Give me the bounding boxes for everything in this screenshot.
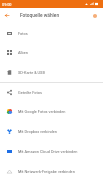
staticText: Mit Google Fotos verbinden bbox=[18, 109, 66, 114]
staticText: Mit Amazon Cloud Drive verbinden bbox=[18, 149, 78, 154]
staticText: Mit Netzwerk-Freigabe verbinden bbox=[18, 169, 75, 174]
staticText: Alben bbox=[18, 50, 28, 55]
staticText: Geteilte Fotos bbox=[18, 90, 43, 95]
button[interactable]: Settings bbox=[87, 8, 102, 23]
staticText: Fotoquelle wählen bbox=[20, 13, 60, 19]
button[interactable]: SD-Karte & USB bbox=[0, 62, 103, 82]
button[interactable]: Fotos bbox=[0, 23, 103, 43]
staticText: Mit Dropbox verbinden bbox=[18, 129, 58, 134]
button[interactable]: Geteilte Fotos bbox=[0, 82, 103, 102]
staticText: SD-Karte & USB bbox=[18, 70, 45, 75]
button[interactable]: Mit Netzwerk-Freigabe verbinden bbox=[0, 161, 103, 181]
button[interactable]: Mit Google Fotos verbinden bbox=[0, 101, 103, 121]
staticText: Fotos bbox=[18, 31, 28, 36]
staticText: 09:00 bbox=[2, 2, 12, 6]
button[interactable]: Alben bbox=[0, 42, 103, 62]
button[interactable]: Mit Dropbox verbinden bbox=[0, 121, 103, 141]
button[interactable]: Mit Amazon Cloud Drive verbinden bbox=[0, 141, 103, 161]
button[interactable]: Back bbox=[0, 8, 14, 23]
